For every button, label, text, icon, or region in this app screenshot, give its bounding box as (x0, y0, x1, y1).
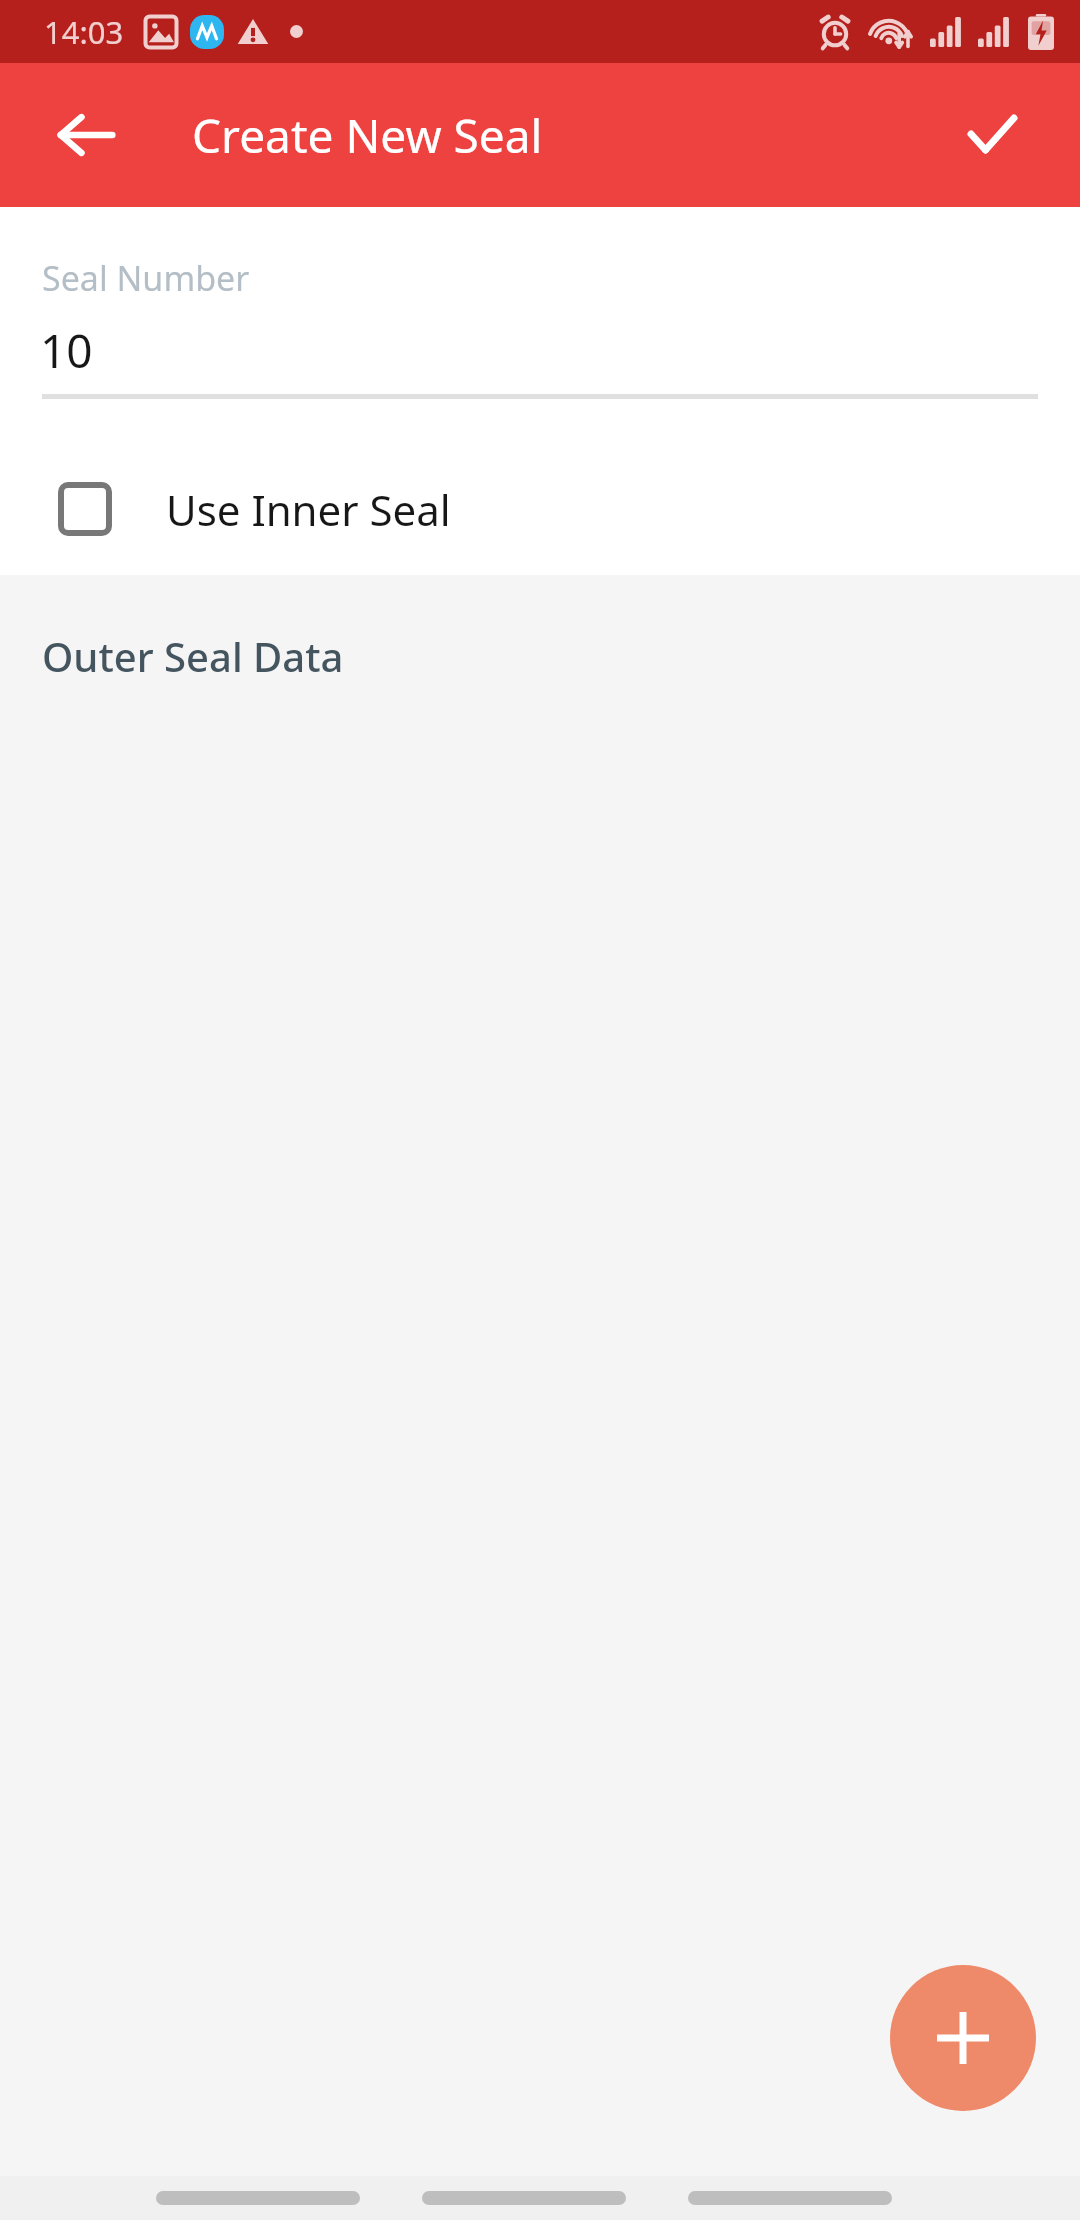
button[interactable]: Save (944, 87, 1040, 183)
staticText: 10 (40, 319, 93, 382)
staticText: Outer Seal Data (42, 629, 344, 683)
button[interactable]: Use Inner Seal (0, 447, 1080, 571)
staticText: Seal Number (42, 255, 250, 301)
staticText: 14:03 (44, 11, 124, 53)
staticText: Create New Seal (192, 104, 543, 167)
staticText: Use Inner Seal (166, 481, 451, 538)
button[interactable]: Back (38, 87, 134, 183)
button[interactable]: Add (890, 1965, 1036, 2111)
